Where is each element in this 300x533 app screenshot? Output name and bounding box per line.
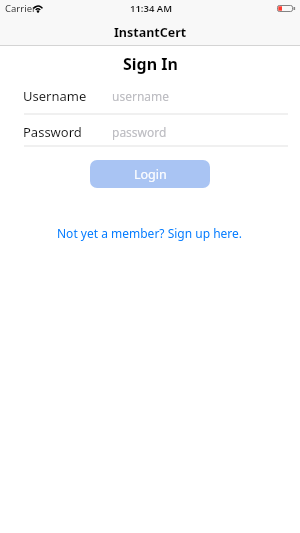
staticText: username (112, 88, 170, 104)
staticText: Carrier (5, 2, 36, 15)
button[interactable]: Username (0, 84, 300, 113)
staticText: Username (23, 87, 87, 105)
button[interactable]: Not yet a member? Sign up here. (57, 225, 243, 241)
staticText: 11:34 AM (130, 2, 173, 15)
staticText: Sign In (123, 53, 178, 75)
staticText: password (112, 124, 167, 140)
button[interactable]: Password (0, 119, 300, 145)
staticText: Password (23, 123, 82, 141)
staticText: Login (134, 166, 167, 183)
staticText: InstantCert (114, 24, 187, 41)
button[interactable]: Login (90, 160, 210, 188)
